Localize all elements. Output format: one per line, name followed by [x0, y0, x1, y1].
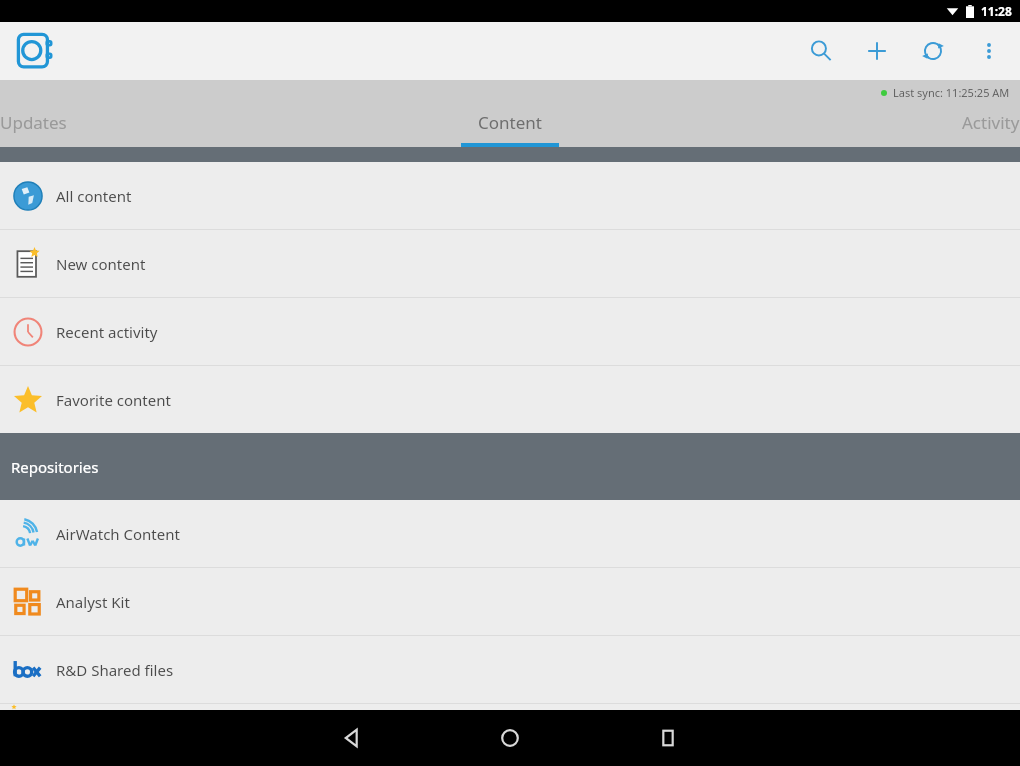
button[interactable]: Favorite content	[0, 366, 1020, 433]
button[interactable]: New content	[0, 230, 1020, 297]
button[interactable]: Recent apps	[644, 714, 692, 762]
staticText: Activity	[962, 111, 1020, 134]
button[interactable]: All content	[0, 162, 1020, 229]
button[interactable]: AirWatch Content	[0, 500, 1020, 567]
staticText: 11:28	[981, 3, 1012, 19]
button[interactable]: Content	[340, 104, 680, 147]
button[interactable]: Sync	[912, 30, 954, 72]
staticText: Analyst Kit	[56, 592, 130, 612]
staticText: Repositories	[11, 457, 99, 477]
button[interactable]: Recent activity	[0, 298, 1020, 365]
button[interactable]: Activity	[680, 104, 1020, 147]
button[interactable]: Home	[486, 714, 534, 762]
staticText: All content	[56, 186, 132, 206]
staticText: Recent activity	[56, 322, 158, 342]
staticText: Updates	[0, 111, 67, 134]
staticText: Content	[478, 111, 542, 134]
staticText: Favorite content	[56, 390, 171, 410]
button[interactable]: More options	[968, 30, 1010, 72]
button[interactable]: Search	[800, 30, 842, 72]
button[interactable]: Back	[328, 714, 376, 762]
staticText: New content	[56, 254, 146, 274]
staticText: AirWatch Content	[56, 524, 180, 544]
staticText: Last sync: 11:25:25 AM	[893, 85, 1010, 100]
button[interactable]: Analyst Kit	[0, 568, 1020, 635]
staticText: R&D Shared files	[56, 660, 174, 680]
button[interactable]: App logo, navigate up	[12, 27, 60, 75]
button[interactable]: Add	[856, 30, 898, 72]
button[interactable]: Updates	[0, 104, 340, 147]
button[interactable]: R&D Shared files	[0, 636, 1020, 703]
